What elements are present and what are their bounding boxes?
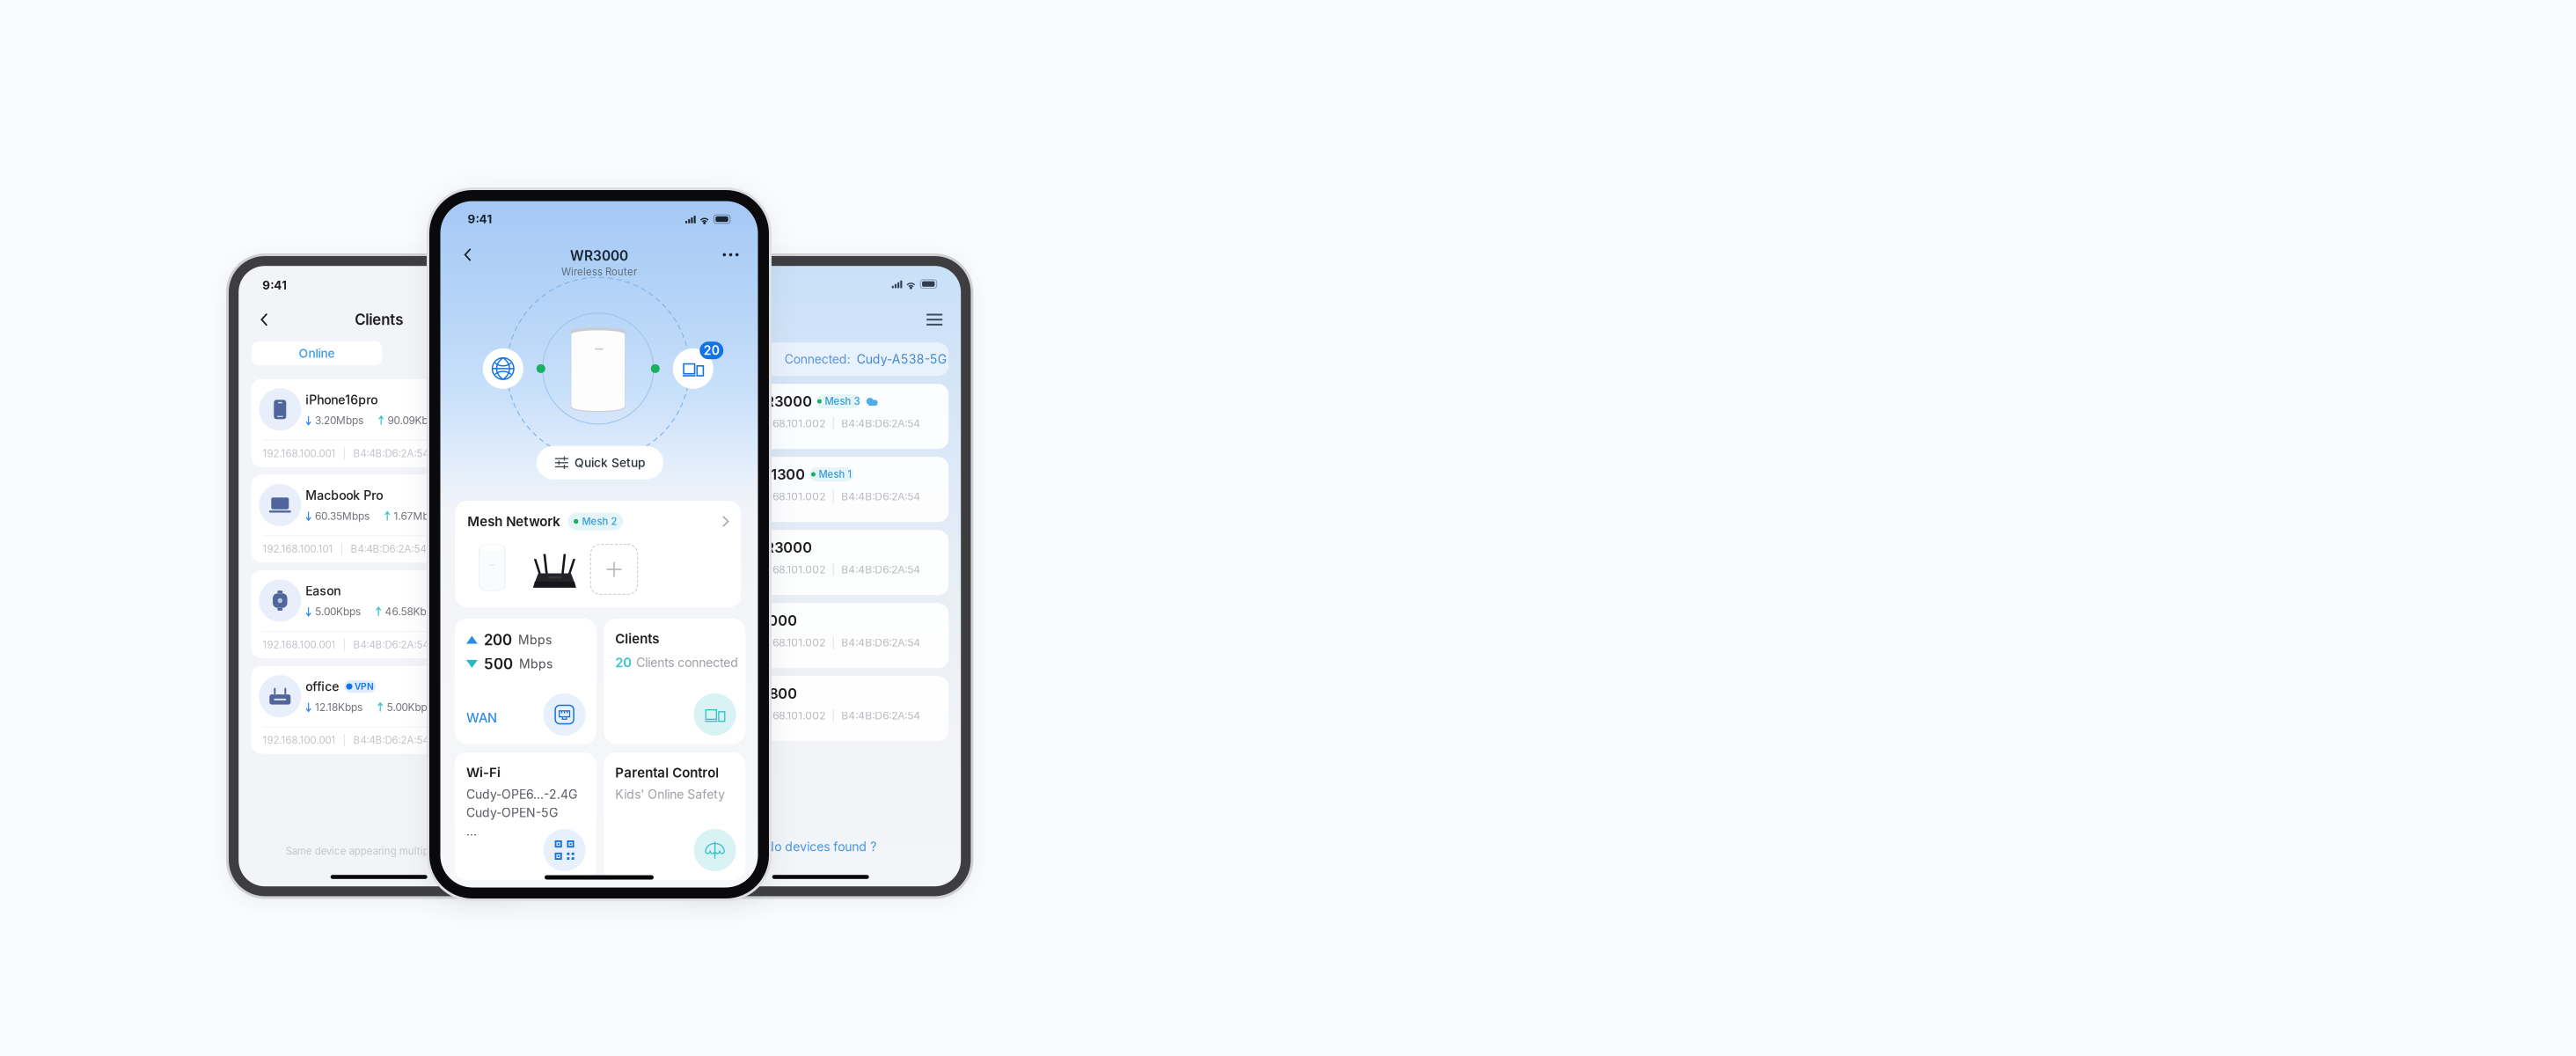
button[interactable]: Quick Setup bbox=[537, 446, 663, 479]
staticText: | bbox=[832, 490, 835, 503]
staticText: 12.18Kbps bbox=[315, 701, 362, 714]
staticText: 46.58Kbps bbox=[385, 605, 438, 618]
staticText: Wireless Router bbox=[561, 266, 637, 278]
staticText: 500 bbox=[484, 655, 513, 673]
staticText: WR3000 bbox=[750, 539, 812, 556]
staticText: Clients connected bbox=[636, 655, 738, 670]
staticText: Same device appearing multiple times? bbox=[286, 845, 472, 857]
staticText: WAN bbox=[466, 710, 497, 726]
staticText: AX1300 bbox=[750, 466, 805, 483]
button[interactable]: 20 connected clients bbox=[673, 348, 713, 389]
staticText: No devices found ? bbox=[765, 839, 876, 854]
staticText: Parental Control bbox=[615, 765, 719, 781]
staticText: X6000 bbox=[750, 612, 797, 629]
staticText: Clients bbox=[615, 631, 659, 647]
staticText: B4:4B:D6:2A:54 bbox=[841, 417, 920, 430]
staticText: 5.00Kbps bbox=[315, 605, 361, 618]
button[interactable]: M1800 bbox=[693, 676, 949, 741]
button[interactable]: WR3000 bbox=[693, 530, 949, 595]
staticText: | bbox=[832, 417, 835, 430]
staticText: Macbook Pro bbox=[306, 488, 383, 503]
staticText: 5.00Kbps bbox=[387, 701, 432, 714]
staticText: 192.168.100.001 bbox=[263, 734, 336, 746]
button[interactable]: Back bbox=[451, 238, 484, 271]
button[interactable]: X6000 bbox=[693, 603, 949, 668]
staticText: | bbox=[343, 639, 346, 651]
staticText: Mbps bbox=[519, 656, 552, 671]
staticText: Eason bbox=[306, 583, 341, 598]
staticText: B4:4B:D6:2A:54 bbox=[841, 636, 920, 649]
staticText: 90.09Kbps bbox=[388, 414, 439, 427]
button[interactable]: Back bbox=[247, 303, 281, 336]
button[interactable]: Wi-Fi bbox=[455, 752, 596, 880]
button[interactable]: WR3000 bbox=[693, 384, 949, 449]
staticText: 9:41 bbox=[468, 212, 492, 226]
staticText: B4:4B:D6:2A:54 bbox=[351, 543, 426, 555]
staticText: Wi-Fi bbox=[466, 765, 501, 781]
staticText: | bbox=[340, 543, 343, 555]
staticText: B4:4B:D6:2A:54 bbox=[353, 734, 429, 746]
staticText: | bbox=[832, 636, 835, 649]
button[interactable]: Macbook Pro bbox=[251, 475, 507, 563]
staticText: Mesh 1 bbox=[819, 468, 852, 480]
staticText: | bbox=[343, 447, 346, 460]
staticText: Mesh 2 bbox=[582, 515, 617, 527]
staticText: WR3000 bbox=[570, 248, 628, 264]
staticText: WR3000 bbox=[750, 393, 812, 410]
staticText: Online bbox=[299, 346, 335, 361]
button[interactable]: Parental Control bbox=[604, 752, 745, 880]
button[interactable]: Eason bbox=[251, 570, 507, 658]
staticText: Connected: bbox=[785, 352, 850, 367]
button[interactable]: iPhone16pro bbox=[251, 379, 507, 467]
staticText: 3.20Mbps bbox=[315, 414, 363, 427]
staticText: | bbox=[343, 734, 346, 746]
button[interactable]: More options bbox=[714, 238, 747, 271]
staticText: Cudy-A538-5G bbox=[857, 352, 946, 367]
staticText: B4:4B:D6:2A:54 bbox=[841, 563, 920, 576]
staticText: M1800 bbox=[750, 685, 797, 702]
staticText: B4:4B:D6:2A:54 bbox=[841, 709, 920, 722]
staticText: 192.168.101.002 bbox=[750, 636, 825, 649]
staticText: B4:4B:D6:2A:54 bbox=[353, 447, 429, 460]
staticText: | bbox=[832, 709, 835, 722]
button[interactable]: Online bbox=[252, 341, 382, 365]
staticText: B4:4B:D6:2A:54 bbox=[841, 490, 920, 503]
button[interactable]: Clients bbox=[604, 619, 745, 744]
button[interactable]: office bbox=[251, 666, 507, 754]
button[interactable]: Menu bbox=[918, 303, 951, 336]
staticText: Cudy-OPE6...-2.4G bbox=[466, 787, 577, 802]
staticText: 20 bbox=[615, 655, 632, 670]
staticText: 192.168.101.002 bbox=[750, 709, 825, 722]
staticText: 60.35Mbps bbox=[315, 510, 369, 522]
staticText: Kids' Online Safety bbox=[615, 787, 725, 802]
staticText: 20 bbox=[704, 343, 719, 358]
staticText: 192.168.100.101 bbox=[263, 543, 333, 555]
staticText: 192.168.101.002 bbox=[750, 490, 825, 503]
staticText: Clients bbox=[355, 311, 403, 329]
staticText: Quick Setup bbox=[574, 455, 645, 470]
staticText: 192.168.101.002 bbox=[750, 563, 825, 576]
staticText: Cudy-OPEN-5G bbox=[466, 805, 558, 820]
staticText: 9:41 bbox=[262, 278, 287, 292]
staticText: 192.168.101.002 bbox=[750, 417, 825, 430]
staticText: office bbox=[306, 679, 339, 694]
staticText: ... bbox=[466, 824, 477, 838]
button[interactable]: Mesh Network bbox=[455, 501, 741, 607]
staticText: Mbps bbox=[518, 632, 552, 647]
staticText: Mesh Network bbox=[467, 513, 561, 529]
staticText: | bbox=[832, 563, 835, 576]
button[interactable]: Internet status bbox=[483, 348, 523, 389]
button[interactable]: AX1300 bbox=[693, 457, 949, 522]
button[interactable]: 200 bbox=[455, 619, 596, 744]
staticText: VPN bbox=[355, 681, 374, 692]
staticText: iPhone16pro bbox=[306, 392, 378, 407]
staticText: 192.168.100.001 bbox=[263, 447, 336, 460]
staticText: 192.168.100.001 bbox=[263, 639, 336, 651]
staticText: B4:4B:D6:2A:54 bbox=[353, 639, 429, 651]
staticText: 200 bbox=[484, 631, 512, 649]
staticText: Mesh 3 bbox=[825, 395, 860, 407]
staticText: 1.67Mbps bbox=[394, 510, 440, 522]
